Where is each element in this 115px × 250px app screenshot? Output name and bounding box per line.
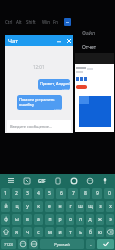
button[interactable]: Fn [53, 18, 59, 26]
button[interactable]: э [106, 214, 114, 225]
button[interactable]: ю [96, 227, 104, 237]
button[interactable]: 9 [92, 188, 102, 199]
button[interactable]: . [86, 239, 95, 249]
button[interactable]: Привет, Андрей [38, 79, 70, 90]
staticText: н [58, 203, 62, 210]
button[interactable]: н [56, 201, 64, 212]
button[interactable]: Stickers [21, 175, 32, 186]
button[interactable]: ж [96, 214, 104, 225]
staticText: Помоги устранить ошибку [19, 97, 55, 107]
button[interactable]: Emoji [84, 175, 95, 186]
button[interactable]: 7 [68, 188, 78, 199]
button[interactable]: Voice input [99, 175, 110, 186]
button[interactable]: 3 [23, 188, 32, 199]
button[interactable]: Language [29, 239, 38, 249]
button[interactable]: ч [23, 227, 32, 237]
button[interactable]: м [45, 227, 54, 237]
button[interactable]: к [34, 201, 43, 212]
button[interactable]: Clipboard [5, 175, 16, 186]
button[interactable]: е [45, 201, 54, 212]
staticText: м [48, 229, 52, 236]
staticText: Файл [82, 30, 95, 37]
button[interactable]: щ [86, 201, 94, 212]
staticText: я [15, 229, 18, 236]
staticText: Введите сообщение... [10, 124, 53, 129]
button[interactable]: 8 [80, 188, 90, 199]
button[interactable]: ф [1, 214, 10, 225]
button[interactable]: ?123 [1, 239, 16, 249]
button[interactable]: Введите сообщение... [7, 120, 71, 132]
button[interactable]: 5 [45, 188, 54, 199]
button[interactable]: Backspace [106, 227, 114, 237]
button[interactable]: п [45, 214, 54, 225]
button[interactable]: Shift [26, 18, 36, 26]
staticText: х [109, 203, 112, 210]
button[interactable]: 4 [34, 188, 43, 199]
button[interactable]: 0 [104, 188, 114, 199]
staticText: 12:01 [62, 87, 69, 90]
staticText: . [90, 241, 92, 248]
button[interactable]: ц [12, 201, 21, 212]
staticText: 12:01 [33, 64, 45, 70]
staticText: ш [78, 203, 83, 210]
button[interactable]: Alt [16, 18, 22, 26]
button[interactable]: д [86, 214, 94, 225]
staticText: ?123 [4, 242, 13, 247]
button[interactable]: Minimize [54, 35, 63, 46]
button[interactable]: Translate [52, 175, 63, 186]
staticText: з [99, 203, 102, 210]
staticText: в [26, 216, 29, 223]
staticText: э [109, 216, 112, 223]
button[interactable]: й [1, 201, 10, 212]
button[interactable]: Close [64, 35, 73, 46]
staticText: 3 [26, 190, 29, 197]
button[interactable]: ы [12, 214, 21, 225]
button[interactable]: 6 [56, 188, 66, 199]
button[interactable]: б [86, 227, 94, 237]
button[interactable]: Ctrl [5, 18, 13, 26]
staticText: Shift [26, 19, 36, 25]
staticText: щ [88, 203, 93, 210]
button[interactable]: Settings [68, 175, 79, 186]
button[interactable]: х [106, 201, 114, 212]
staticText: п [48, 216, 52, 223]
staticText: Отчет [82, 44, 97, 51]
staticText: с [37, 229, 40, 236]
button[interactable]: Помоги устранить ошибку [17, 95, 62, 110]
button[interactable]: г [66, 201, 74, 212]
staticText: й [4, 203, 8, 210]
button[interactable]: у [23, 201, 32, 212]
button[interactable]: Send [97, 239, 114, 249]
staticText: 1 [4, 190, 7, 197]
button[interactable]: 2 [12, 188, 21, 199]
button[interactable]: GIF [36, 175, 47, 186]
button[interactable]: Файл [82, 30, 95, 37]
button[interactable]: с [34, 227, 43, 237]
staticText: 5 [48, 190, 51, 197]
button[interactable]: ш [76, 201, 84, 212]
button[interactable]: в [23, 214, 32, 225]
button[interactable]: ь [76, 227, 84, 237]
button[interactable]: Русский [40, 239, 84, 249]
staticText: у [26, 203, 29, 210]
button[interactable]: и [56, 227, 64, 237]
button[interactable]: я [12, 227, 21, 237]
staticText: 2 [15, 190, 18, 197]
button[interactable]: о [66, 214, 74, 225]
button[interactable] [75, 53, 114, 132]
staticText: ф [4, 216, 8, 223]
staticText: б [89, 229, 92, 236]
button[interactable]: Win [42, 18, 51, 26]
staticText: ы [15, 216, 19, 223]
button[interactable]: Emoji [18, 239, 27, 249]
button[interactable]: р [56, 214, 64, 225]
button[interactable]: Отчет [82, 44, 97, 51]
button[interactable]: л [76, 214, 84, 225]
button[interactable]: 1 [1, 188, 10, 199]
staticText: ж [98, 216, 102, 223]
button[interactable]: Apps [64, 18, 71, 26]
button[interactable]: т [66, 227, 74, 237]
button[interactable]: Shift [1, 227, 10, 237]
button[interactable]: а [34, 214, 43, 225]
button[interactable]: з [96, 201, 104, 212]
